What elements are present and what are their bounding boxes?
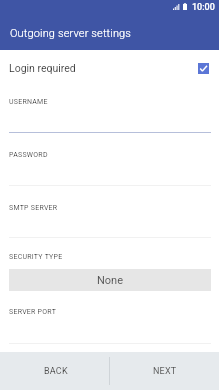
button[interactable]: Login required checkbox xyxy=(198,63,209,74)
staticText: PASSWORD xyxy=(9,151,48,159)
staticText: SERVER PORT xyxy=(9,308,57,316)
staticText: Outgoing server settings xyxy=(10,27,132,40)
staticText: SECURITY TYPE xyxy=(9,253,63,261)
staticText: SMTP SERVER xyxy=(9,204,58,212)
staticText: NEXT xyxy=(153,366,177,377)
staticText: Login required xyxy=(9,62,76,74)
staticText: USERNAME xyxy=(9,98,48,106)
button[interactable]: Login required xyxy=(0,50,219,86)
button[interactable]: NEXT xyxy=(110,352,219,390)
staticText: 10:00 xyxy=(192,2,215,13)
button[interactable]: BACK xyxy=(0,352,109,390)
staticText: None xyxy=(97,274,124,287)
button[interactable]: None xyxy=(9,269,211,291)
staticText: BACK xyxy=(44,366,68,377)
